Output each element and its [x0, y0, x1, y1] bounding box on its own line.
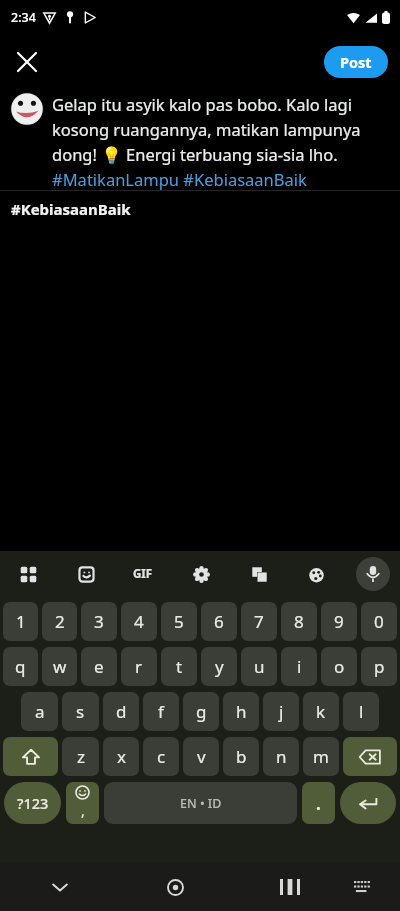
button[interactable]: g	[183, 692, 219, 731]
button[interactable]: m	[303, 737, 339, 776]
staticText: j	[279, 700, 284, 723]
staticText: p	[374, 655, 385, 678]
button[interactable]: GIF	[125, 556, 161, 592]
staticText: GIF	[133, 566, 153, 582]
button[interactable]: i	[281, 647, 317, 686]
button[interactable]: j	[263, 692, 299, 731]
button[interactable]: w	[42, 647, 77, 686]
button[interactable]: 0	[361, 602, 397, 641]
button[interactable]: n	[263, 737, 299, 776]
button[interactable]: 9	[321, 602, 357, 641]
staticText: .	[316, 792, 321, 815]
button[interactable]: EN • ID	[104, 782, 297, 824]
button[interactable]: 2	[42, 602, 77, 641]
button[interactable]: Home	[153, 865, 197, 909]
button[interactable]: #KebiasaanBaik	[11, 199, 131, 219]
button[interactable]: t	[161, 647, 197, 686]
button[interactable]: c	[143, 737, 179, 776]
button[interactable]: Backspace	[343, 737, 397, 776]
button[interactable]: r	[121, 647, 157, 686]
button[interactable]: p	[361, 647, 397, 686]
button[interactable]: k	[303, 692, 339, 731]
button[interactable]: Translate	[241, 556, 277, 592]
button[interactable]: f	[143, 692, 179, 731]
button[interactable]: Settings	[183, 556, 219, 592]
staticText: m	[313, 745, 329, 768]
staticText: c	[157, 745, 166, 768]
button[interactable]: l	[343, 692, 379, 731]
button[interactable]: Stickers	[68, 556, 104, 592]
button[interactable]: Apps	[10, 556, 46, 592]
staticText: y	[215, 655, 224, 678]
button[interactable]	[10, 92, 44, 126]
staticText: 8	[294, 610, 304, 633]
button[interactable]: a	[21, 692, 58, 731]
button[interactable]: Recents	[268, 865, 312, 909]
button[interactable]: Close	[8, 43, 46, 81]
button[interactable]: ?123	[4, 782, 61, 824]
staticText: z	[77, 745, 85, 768]
staticText: 9	[334, 610, 344, 633]
button[interactable]: o	[321, 647, 357, 686]
button[interactable]: 8	[281, 602, 317, 641]
staticText: s	[76, 700, 85, 723]
button[interactable]: d	[103, 692, 139, 731]
staticText: l	[359, 700, 364, 723]
staticText: 4	[134, 610, 144, 633]
button[interactable]: q	[3, 647, 38, 686]
staticText: a	[35, 700, 45, 723]
button[interactable]: 4	[121, 602, 157, 641]
staticText: i	[297, 655, 302, 678]
staticText: w	[53, 655, 67, 678]
staticText: t	[176, 655, 183, 678]
staticText: n	[276, 745, 287, 768]
button[interactable]: Emoji	[66, 782, 99, 824]
button[interactable]: b	[223, 737, 259, 776]
button[interactable]: Shift	[3, 737, 58, 776]
staticText: x	[117, 745, 126, 768]
staticText: Gelap itu asyik kalo pas bobo. Kalo lagi…	[52, 93, 392, 190]
button[interactable]: Post	[324, 46, 388, 78]
staticText: v	[197, 745, 206, 768]
staticText: 2	[55, 610, 65, 633]
button[interactable]: 6	[201, 602, 237, 641]
button[interactable]: Enter	[340, 782, 396, 824]
staticText: q	[15, 655, 26, 678]
button[interactable]: u	[241, 647, 277, 686]
staticText: g	[196, 700, 207, 723]
button[interactable]: 3	[81, 602, 117, 641]
staticText: 7	[254, 610, 264, 633]
staticText: Post	[340, 52, 372, 72]
staticText: o	[334, 655, 345, 678]
button[interactable]: 7	[241, 602, 277, 641]
button[interactable]: s	[62, 692, 99, 731]
staticText: b	[236, 745, 247, 768]
button[interactable]: .	[302, 782, 335, 824]
staticText: 2:34	[11, 9, 36, 26]
staticText: f	[158, 700, 164, 723]
button[interactable]: v	[183, 737, 219, 776]
button[interactable]: Themes	[298, 556, 334, 592]
staticText: ,	[81, 801, 85, 820]
button[interactable]: x	[103, 737, 139, 776]
staticText: 1	[16, 610, 26, 633]
button[interactable]: 5	[161, 602, 197, 641]
staticText: 6	[214, 610, 224, 633]
button[interactable]: Hide keyboard	[38, 865, 82, 909]
button[interactable]: 1	[3, 602, 38, 641]
staticText: d	[116, 700, 127, 723]
button[interactable]: y	[201, 647, 237, 686]
button[interactable]: Switch keyboard	[342, 867, 382, 907]
staticText: ?123	[17, 793, 49, 813]
staticText: k	[316, 700, 326, 723]
button[interactable]: Voice input	[356, 557, 390, 591]
staticText: u	[254, 655, 265, 678]
staticText: 5	[174, 610, 184, 633]
button[interactable]: e	[81, 647, 117, 686]
staticText: 0	[374, 610, 384, 633]
staticText: EN • ID	[180, 795, 222, 812]
staticText: h	[236, 700, 247, 723]
button[interactable]: h	[223, 692, 259, 731]
button[interactable]: z	[62, 737, 99, 776]
staticText: 3	[94, 610, 104, 633]
